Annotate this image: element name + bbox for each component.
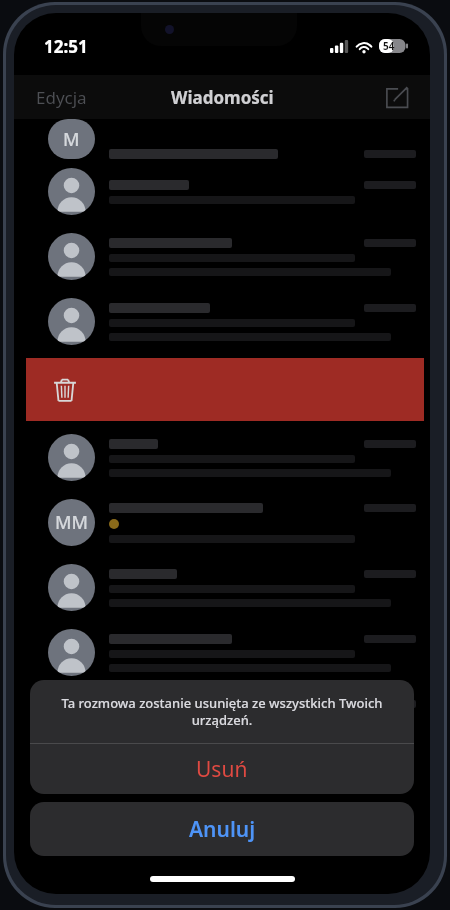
staticText: Ta rozmowa zostanie usunięta ze wszystki… [46,694,398,729]
staticText: Edycja [36,86,87,109]
button[interactable] [14,425,430,490]
button[interactable]: Anuluj [30,802,414,856]
button[interactable]: Usuń [30,744,414,794]
button[interactable] [14,555,430,620]
staticText: Usuń [196,755,248,784]
button[interactable] [14,159,430,224]
button[interactable] [14,685,430,750]
button[interactable]: MM [14,490,430,555]
staticText: MM [55,510,89,535]
other: Usuń [52,377,78,403]
button[interactable] [14,289,430,354]
button[interactable]: Nowa wiadomość [382,82,412,112]
staticText: Anuluj [189,815,256,844]
staticText: 12:51 [44,35,88,58]
button[interactable]: Usuń [26,358,424,421]
button[interactable] [14,224,430,289]
staticText: M [63,127,80,152]
staticText: 54 [383,39,395,53]
button[interactable]: Edycja [36,86,87,109]
staticText: Wiadomości [171,86,274,109]
button[interactable] [14,620,430,685]
button[interactable]: M [14,119,430,159]
